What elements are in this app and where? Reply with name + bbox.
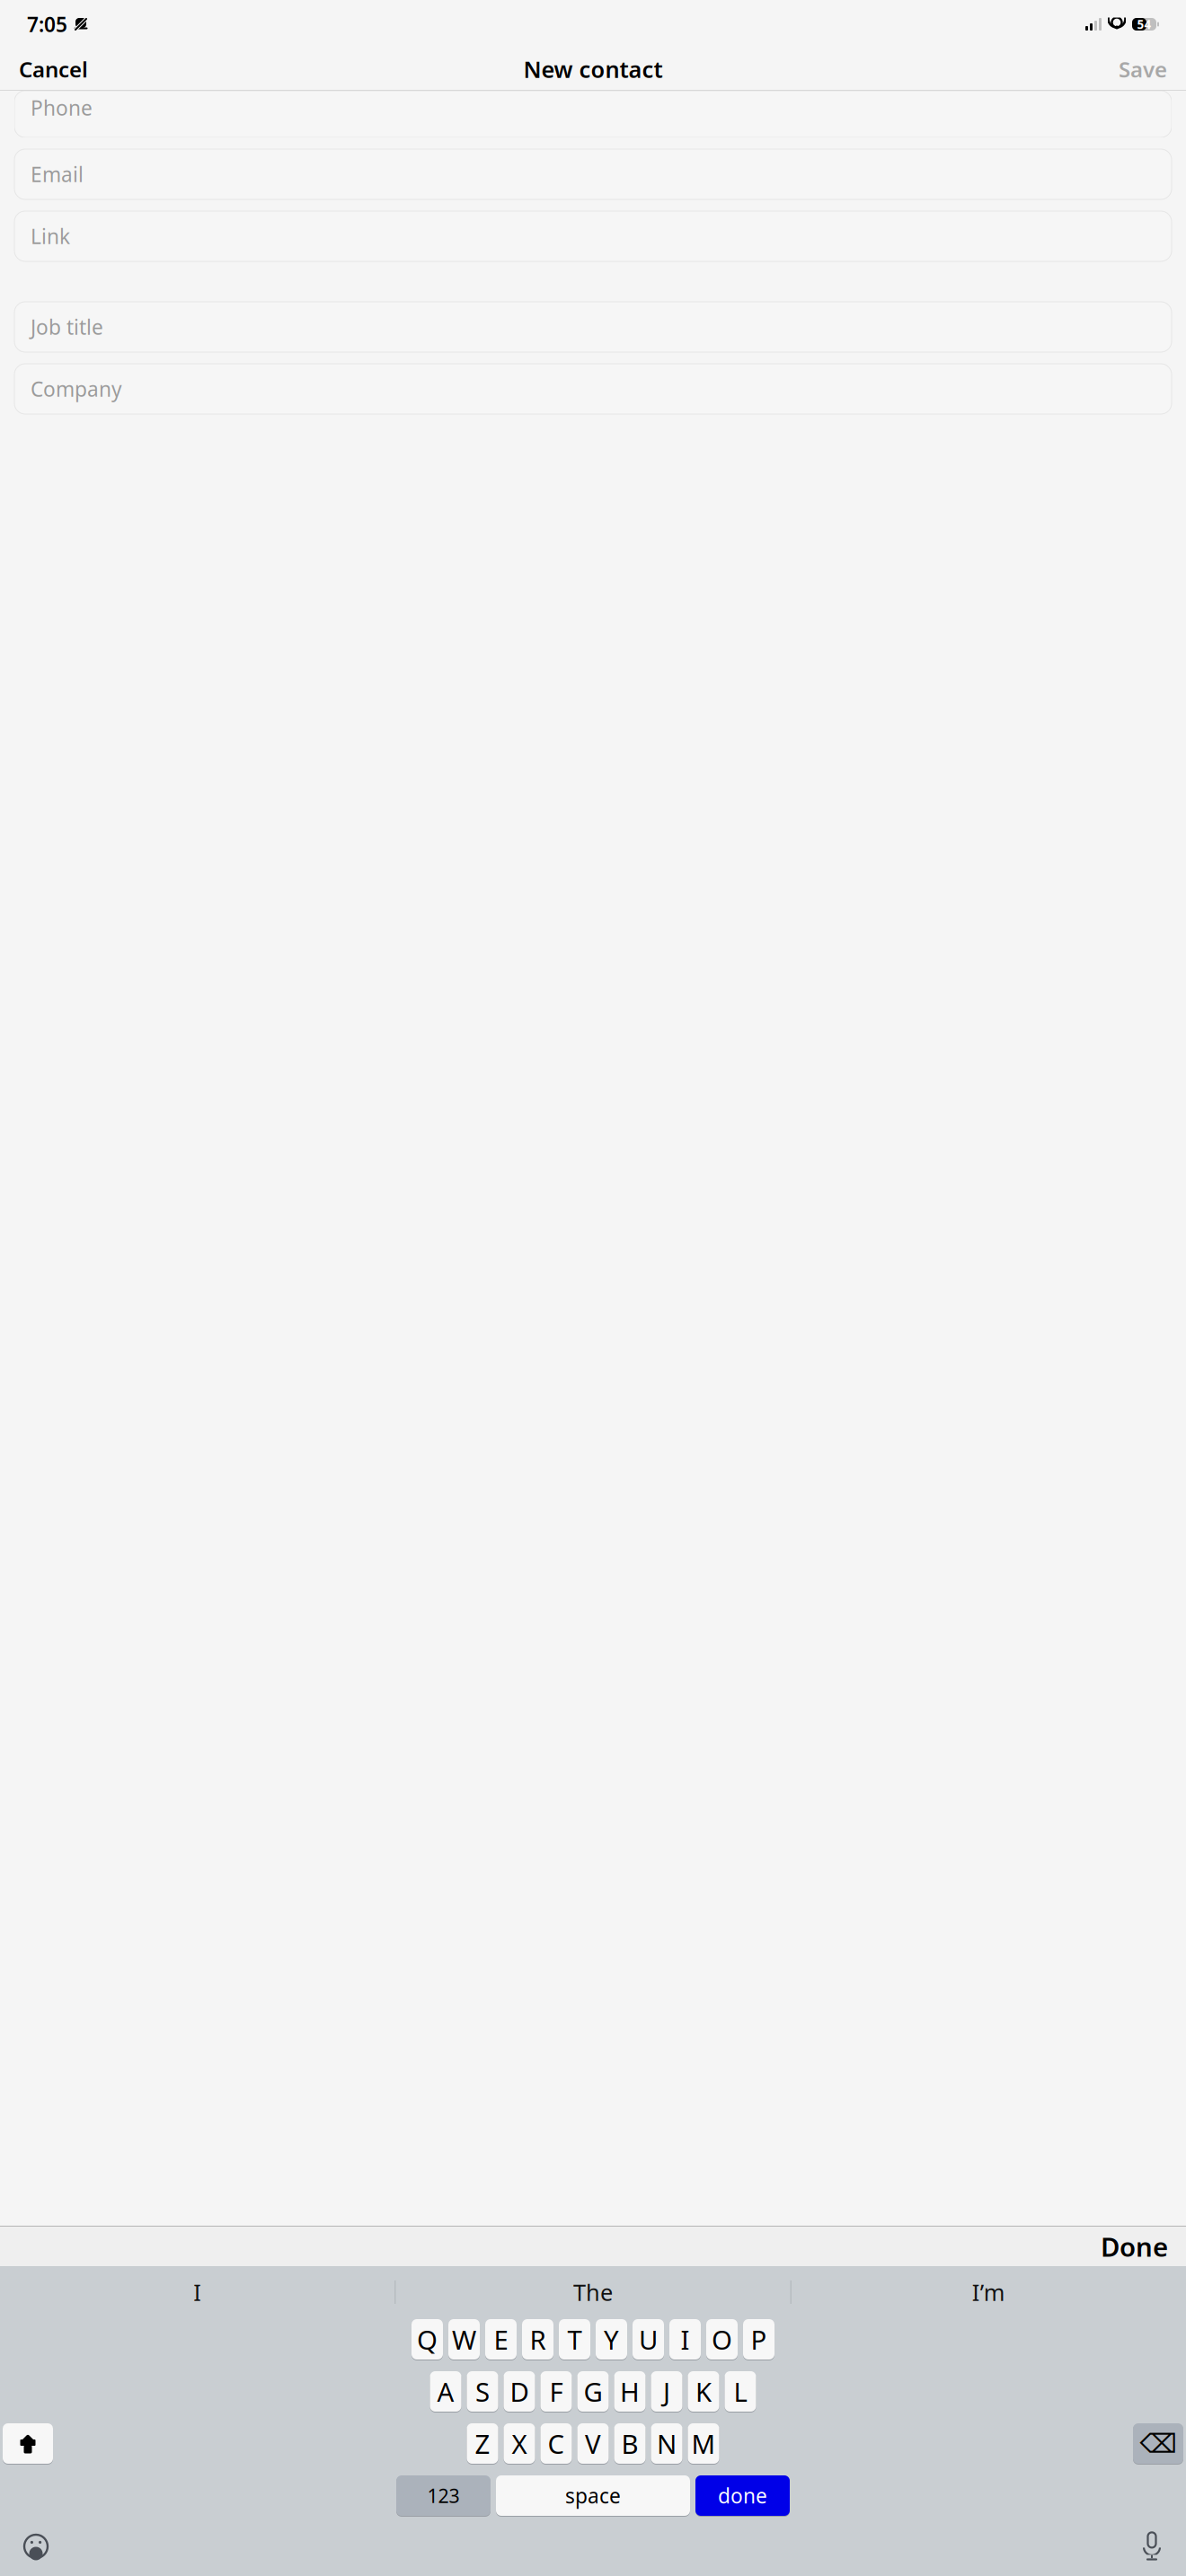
staticText: I’m bbox=[972, 2277, 1005, 2307]
staticText: M bbox=[691, 2426, 716, 2461]
staticText: Cancel bbox=[19, 55, 88, 84]
button[interactable]: W bbox=[448, 2318, 480, 2360]
button[interactable]: F bbox=[540, 2370, 572, 2413]
button[interactable]: S bbox=[467, 2370, 498, 2413]
staticText: S bbox=[475, 2374, 490, 2409]
staticText: G bbox=[584, 2374, 602, 2409]
button[interactable]: Z bbox=[467, 2422, 498, 2465]
button[interactable]: J bbox=[651, 2370, 682, 2413]
staticText: ⌫ bbox=[1140, 2429, 1177, 2459]
button[interactable]: I bbox=[669, 2318, 701, 2360]
staticText: New contact bbox=[523, 54, 663, 84]
staticText: space bbox=[565, 2482, 621, 2509]
staticText: P bbox=[751, 2322, 767, 2357]
staticText: W bbox=[452, 2322, 476, 2357]
button[interactable]: E bbox=[485, 2318, 517, 2360]
button[interactable]: P bbox=[743, 2318, 774, 2360]
button[interactable]: Link bbox=[14, 211, 1172, 261]
staticText: 123 bbox=[427, 2483, 460, 2508]
staticText: Z bbox=[475, 2426, 490, 2461]
staticText: Company bbox=[31, 375, 122, 402]
staticText: Job title bbox=[31, 313, 103, 340]
staticText: N bbox=[657, 2426, 677, 2461]
button[interactable]: T bbox=[559, 2318, 590, 2360]
staticText: 7:05 bbox=[27, 11, 67, 38]
staticText: Phone bbox=[31, 94, 93, 121]
staticText: J bbox=[663, 2374, 670, 2409]
button[interactable]: D bbox=[504, 2370, 535, 2413]
staticText: Link bbox=[31, 223, 70, 250]
button[interactable]: done bbox=[695, 2475, 790, 2517]
button[interactable]: Q bbox=[412, 2318, 443, 2360]
button[interactable]: L bbox=[725, 2370, 756, 2413]
staticText: T bbox=[567, 2322, 582, 2357]
button[interactable]: Y bbox=[596, 2318, 627, 2360]
staticText: D bbox=[510, 2374, 529, 2409]
button[interactable]: H bbox=[614, 2370, 646, 2413]
button[interactable]: Cancel bbox=[13, 48, 93, 91]
staticText: U bbox=[639, 2322, 658, 2357]
button[interactable]: G bbox=[577, 2370, 609, 2413]
button[interactable]: The bbox=[396, 2272, 790, 2312]
staticText: E bbox=[494, 2322, 508, 2357]
staticText: I bbox=[193, 2277, 201, 2307]
button[interactable]: I’m bbox=[791, 2272, 1186, 2312]
button[interactable]: B bbox=[614, 2422, 646, 2465]
button[interactable]: V bbox=[577, 2422, 609, 2465]
button[interactable]: Company bbox=[14, 364, 1172, 414]
staticText: The bbox=[573, 2277, 613, 2307]
button[interactable]: X bbox=[504, 2422, 535, 2465]
button[interactable]: M bbox=[688, 2422, 719, 2465]
staticText: L bbox=[734, 2374, 747, 2409]
button[interactable]: C bbox=[540, 2422, 572, 2465]
staticText: C bbox=[548, 2426, 565, 2461]
staticText: A bbox=[437, 2374, 454, 2409]
button[interactable]: Phone bbox=[14, 91, 1172, 137]
staticText: O bbox=[712, 2322, 732, 2357]
staticText: F bbox=[549, 2374, 563, 2409]
staticText: Q bbox=[417, 2322, 438, 2357]
staticText: 54 bbox=[1137, 16, 1151, 32]
button[interactable]: 123 bbox=[396, 2475, 491, 2517]
staticText: R bbox=[530, 2322, 546, 2357]
staticText: Save bbox=[1119, 55, 1167, 84]
staticText: B bbox=[621, 2426, 638, 2461]
button[interactable]: A bbox=[430, 2370, 461, 2413]
button[interactable]: U bbox=[633, 2318, 664, 2360]
staticText: V bbox=[585, 2426, 601, 2461]
staticText: done bbox=[718, 2482, 767, 2509]
button[interactable]: N bbox=[651, 2422, 682, 2465]
button[interactable]: Save bbox=[1113, 48, 1173, 91]
staticText: Done bbox=[1101, 2229, 1168, 2264]
button[interactable]: I bbox=[0, 2272, 395, 2312]
staticText: X bbox=[512, 2426, 527, 2461]
staticText: Email bbox=[31, 161, 84, 188]
button[interactable]: Emoji bbox=[23, 2534, 49, 2559]
button[interactable]: Job title bbox=[14, 302, 1172, 352]
button[interactable]: O bbox=[706, 2318, 738, 2360]
staticText: Y bbox=[604, 2322, 619, 2357]
button[interactable]: Email bbox=[14, 149, 1172, 199]
button[interactable]: Delete bbox=[1133, 2422, 1183, 2465]
button[interactable]: space bbox=[496, 2475, 690, 2517]
staticText: I bbox=[681, 2322, 690, 2357]
staticText: K bbox=[695, 2374, 712, 2409]
button[interactable]: Dictation bbox=[1141, 2532, 1163, 2561]
button[interactable]: K bbox=[688, 2370, 719, 2413]
staticText: H bbox=[620, 2374, 640, 2409]
button[interactable]: Done bbox=[1092, 2222, 1177, 2271]
button[interactable]: Shift bbox=[3, 2422, 53, 2465]
button[interactable]: R bbox=[522, 2318, 553, 2360]
